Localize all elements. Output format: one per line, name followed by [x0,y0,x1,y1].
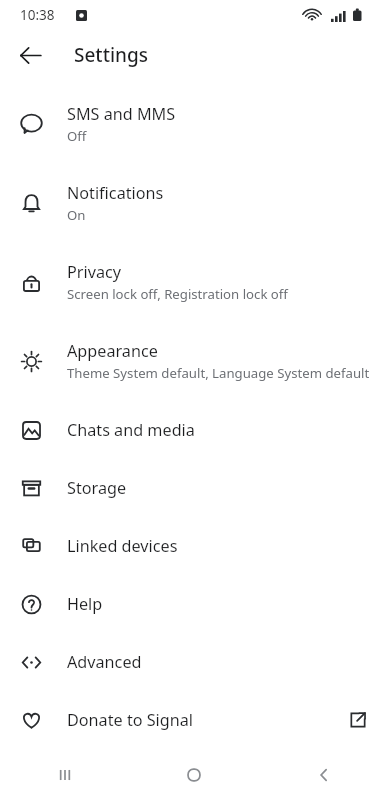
staticText: Screen lock off, Registration lock off [67,285,288,303]
staticText: Chats and media [67,419,195,441]
staticText: Linked devices [67,535,178,557]
staticText: Appearance [67,340,158,362]
staticText: Settings [74,42,148,68]
button[interactable]: Help [0,575,389,633]
button[interactable]: Donate to Signal [0,691,389,749]
staticText: Help [67,593,103,615]
button[interactable]: SMS and MMS [0,84,389,163]
staticText: Theme System default, Language System de… [67,364,370,382]
staticText: Privacy [67,261,121,283]
button[interactable]: Back [8,33,52,77]
button[interactable]: Notifications [0,163,389,242]
staticText: Advanced [67,651,142,673]
button[interactable]: Appearance [0,321,389,401]
button[interactable]: Linked devices [0,517,389,575]
staticText: Donate to Signal [67,709,194,731]
staticText: 10:38 [20,6,55,24]
staticText: On [67,206,86,224]
staticText: SMS and MMS [67,103,176,125]
button[interactable]: Chats and media [0,401,389,459]
other: Open external link [343,705,373,735]
button[interactable]: Advanced [0,633,389,691]
button[interactable]: Recent apps [0,749,129,800]
staticText: Off [67,127,87,145]
staticText: Storage [67,477,127,499]
button[interactable]: Storage [0,459,389,517]
button[interactable]: Home [129,749,259,800]
button[interactable]: Back [259,749,389,800]
staticText: Notifications [67,182,164,204]
button[interactable]: Privacy [0,242,389,321]
